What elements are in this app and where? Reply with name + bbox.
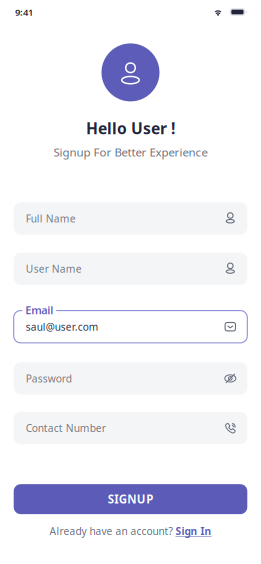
staticText: Signup For Better Experience [53,144,207,160]
button[interactable]: Password [14,362,247,395]
button[interactable]: User Name [14,253,247,285]
staticText: User Name [26,262,82,276]
staticText: saul@user.com [26,320,98,334]
button[interactable]: Full Name [14,202,247,235]
staticText: 9:41 [15,6,33,18]
button[interactable]: Contact Number [14,412,247,444]
button[interactable]: Sign In [175,524,211,538]
staticText: Already have an account? [49,524,172,538]
staticText: Full Name [26,211,76,225]
staticText: SIGNUP [108,491,153,507]
staticText: Hello User ! [86,117,175,139]
button[interactable]: saul@user.com [14,311,247,343]
button[interactable]: SIGNUP [14,484,247,514]
staticText: Contact Number [26,421,106,435]
staticText: Email [25,303,53,317]
staticText: Password [26,371,72,385]
staticText: Sign In [175,524,211,538]
